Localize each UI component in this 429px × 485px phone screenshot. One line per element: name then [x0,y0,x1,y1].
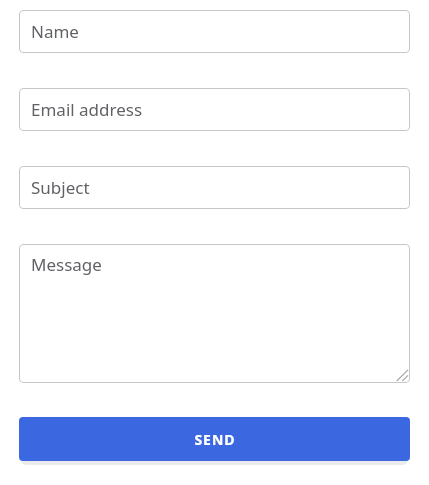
staticText: Subject [31,176,90,199]
button[interactable]: Message [19,244,410,383]
staticText: Message [31,253,102,276]
staticText: Email address [31,98,143,121]
button[interactable]: Subject [19,166,410,209]
staticText: SEND [194,430,236,449]
button[interactable]: Email address [19,88,410,131]
staticText: Name [31,20,79,43]
button[interactable]: Name [19,10,410,53]
button[interactable]: SEND [19,417,410,461]
